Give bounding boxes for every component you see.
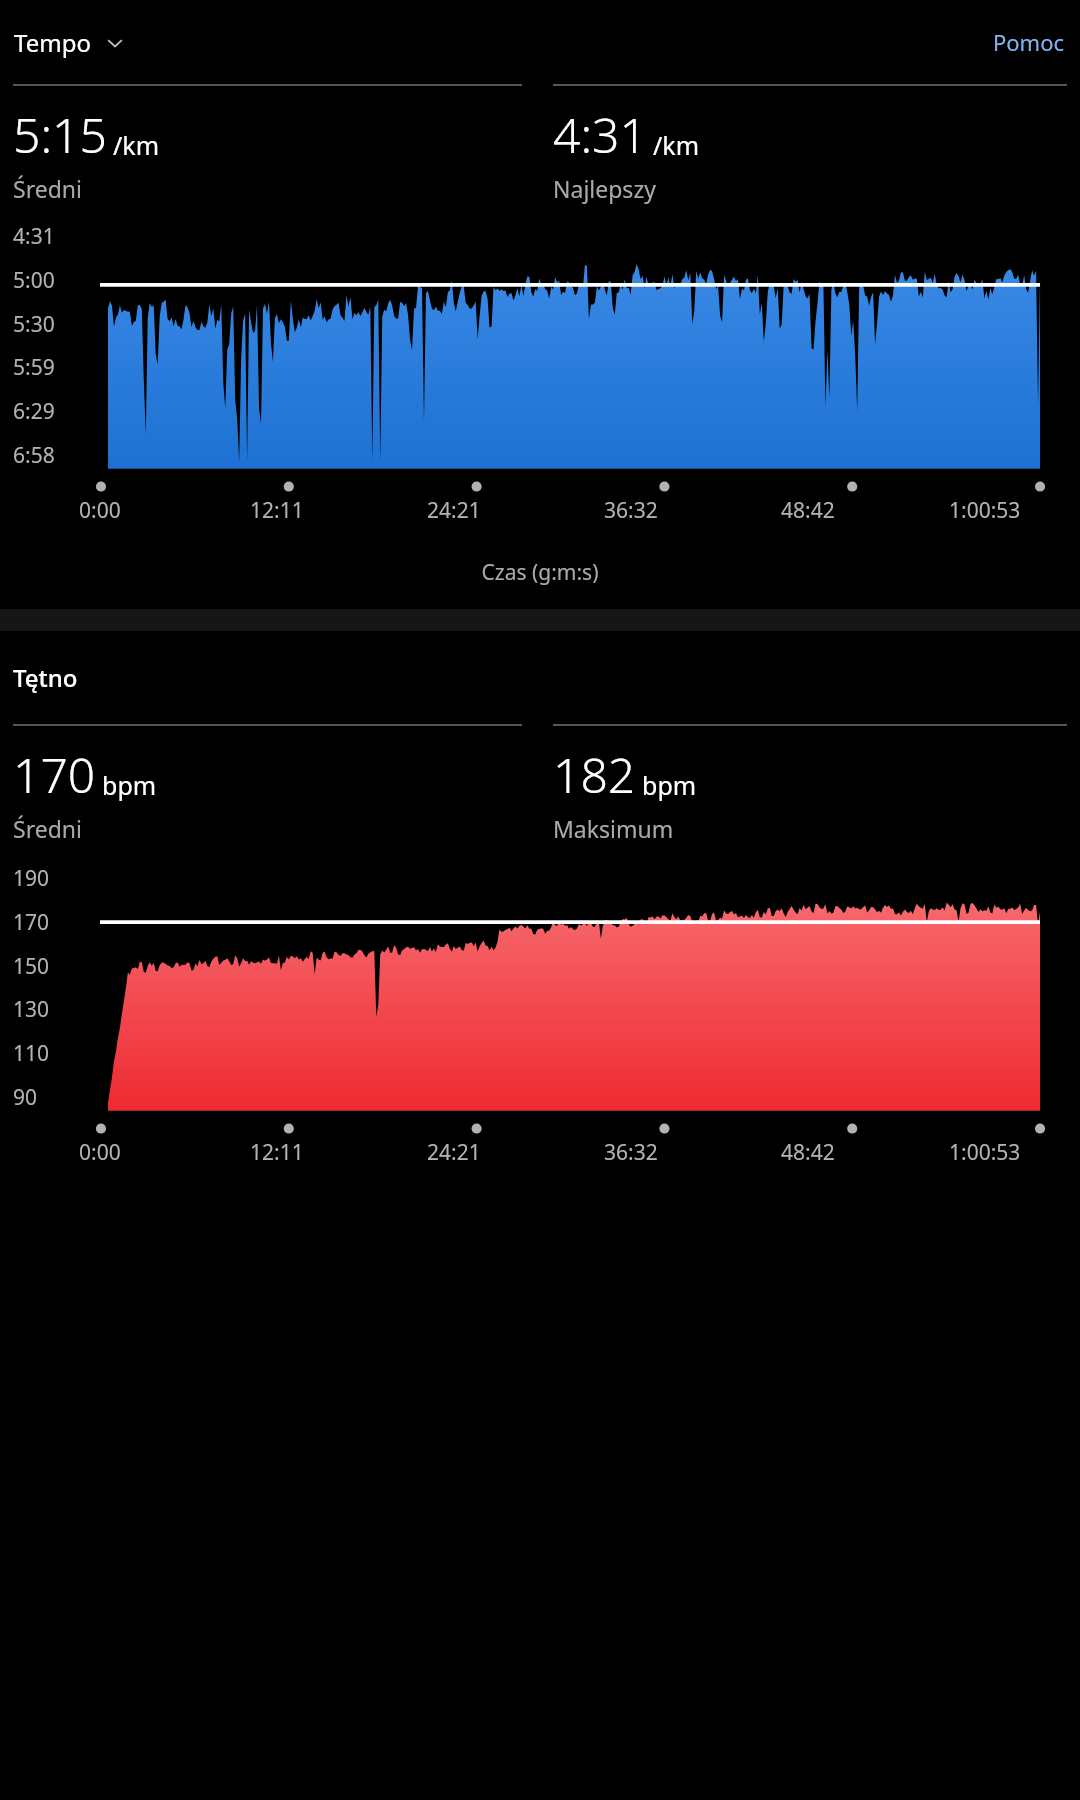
staticText: 24:21 bbox=[427, 496, 481, 525]
staticText: 6:29 bbox=[13, 397, 55, 426]
staticText: 36:32 bbox=[604, 1138, 658, 1167]
staticText: Czas (g:m:s) bbox=[0, 558, 1080, 587]
staticText: 5:00 bbox=[13, 266, 55, 295]
staticText: /km bbox=[113, 128, 160, 162]
staticText: /km bbox=[653, 128, 700, 162]
staticText: 5:15 bbox=[13, 102, 107, 167]
staticText: bpm bbox=[642, 768, 697, 802]
staticText: 4:31 bbox=[13, 222, 55, 251]
staticText: 170 bbox=[13, 742, 96, 807]
staticText: 0:00 bbox=[79, 496, 121, 525]
other: Zmień wykres bbox=[104, 32, 126, 54]
staticText: 130 bbox=[13, 995, 50, 1024]
staticText: 170 bbox=[13, 908, 50, 937]
button[interactable]: Tempo bbox=[12, 21, 128, 64]
staticText: 0:00 bbox=[79, 1138, 121, 1167]
staticText: Średni bbox=[13, 813, 82, 844]
staticText: Pomoc bbox=[993, 27, 1065, 57]
button[interactable]: 4:31 bbox=[553, 84, 1067, 204]
staticText: 190 bbox=[13, 864, 50, 893]
staticText: 150 bbox=[13, 952, 50, 981]
staticText: bpm bbox=[102, 768, 157, 802]
staticText: 4:31 bbox=[553, 102, 647, 167]
staticText: 6:58 bbox=[13, 441, 55, 470]
staticText: 1:00:53 bbox=[949, 496, 1021, 525]
button[interactable]: 182 bbox=[553, 724, 1067, 844]
staticText: Maksimum bbox=[553, 813, 674, 844]
staticText: 90 bbox=[13, 1083, 38, 1112]
staticText: 24:21 bbox=[427, 1138, 481, 1167]
staticText: 48:42 bbox=[781, 496, 835, 525]
staticText: Tętno bbox=[13, 661, 78, 694]
staticText: Średni bbox=[13, 173, 82, 204]
button[interactable]: 170 bbox=[13, 724, 522, 844]
staticText: 36:32 bbox=[604, 496, 658, 525]
staticText: Najlepszy bbox=[553, 173, 656, 204]
staticText: 5:30 bbox=[13, 310, 55, 339]
staticText: 12:11 bbox=[250, 496, 304, 525]
staticText: Tempo bbox=[14, 26, 91, 59]
staticText: 48:42 bbox=[781, 1138, 835, 1167]
staticText: 110 bbox=[13, 1039, 50, 1068]
staticText: 1:00:53 bbox=[949, 1138, 1021, 1167]
staticText: 12:11 bbox=[250, 1138, 304, 1167]
button[interactable]: Pomoc bbox=[987, 20, 1071, 64]
staticText: 182 bbox=[553, 742, 636, 807]
staticText: 5:59 bbox=[13, 353, 55, 382]
button[interactable]: 5:15 bbox=[13, 84, 522, 204]
